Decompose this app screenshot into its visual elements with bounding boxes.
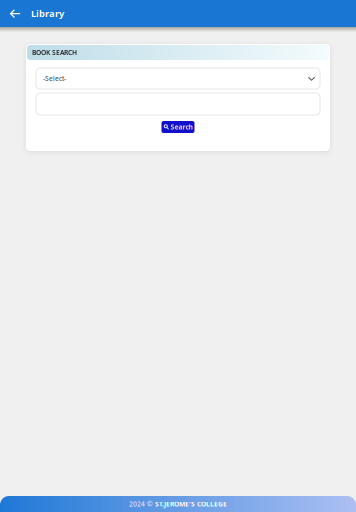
staticText: Library bbox=[31, 7, 64, 20]
button[interactable]: Back bbox=[2, 0, 28, 27]
button[interactable]: Search bbox=[161, 121, 194, 133]
staticText: 2024 © bbox=[129, 500, 155, 508]
button[interactable]: -Select- bbox=[36, 68, 320, 89]
staticText: Search bbox=[170, 123, 192, 131]
staticText: -Select- bbox=[43, 74, 66, 83]
button[interactable]: Library bbox=[28, 0, 72, 27]
staticText: ST.JEROME'S COLLEGE bbox=[155, 500, 227, 508]
staticText: BOOK SEARCH bbox=[32, 48, 77, 57]
